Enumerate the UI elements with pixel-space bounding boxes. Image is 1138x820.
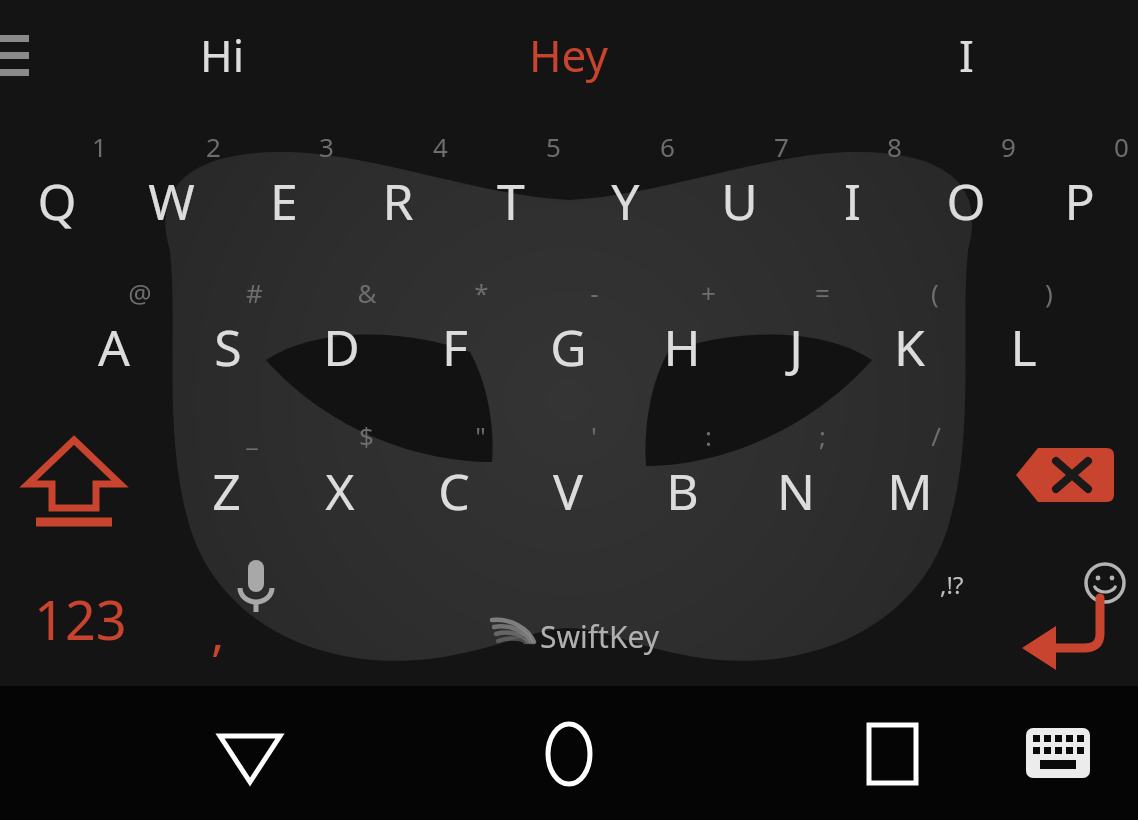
button[interactable]: N	[740, 435, 852, 547]
button[interactable]: I	[796, 145, 908, 257]
button[interactable]: E	[228, 145, 340, 257]
staticText: &	[357, 275, 377, 310]
staticText: V	[553, 457, 583, 525]
staticText: B	[666, 457, 699, 525]
staticText: 0	[1114, 129, 1129, 164]
button[interactable]: H	[626, 291, 738, 403]
staticText: (	[931, 275, 939, 310]
button[interactable]: Hi	[106, 8, 338, 102]
staticText: T	[497, 167, 525, 235]
staticText: *	[474, 275, 489, 310]
button[interactable]: X	[284, 435, 396, 547]
button[interactable]: Home	[520, 712, 616, 796]
button[interactable]: Enter	[1020, 596, 1112, 668]
staticText: I	[959, 25, 974, 85]
staticText: W	[148, 167, 195, 235]
staticText: S	[214, 313, 242, 381]
button[interactable]: W	[115, 145, 227, 257]
button[interactable]: Delete	[1016, 444, 1114, 506]
button[interactable]: Y	[569, 145, 681, 257]
button[interactable]: Hey	[452, 8, 684, 102]
staticText: E	[270, 167, 298, 235]
button[interactable]	[888, 560, 998, 668]
button[interactable]: F	[399, 291, 511, 403]
staticText: 1	[92, 129, 107, 164]
button[interactable]: U	[683, 145, 795, 257]
button[interactable]: K	[853, 291, 965, 403]
staticText: O	[946, 167, 986, 235]
button[interactable]: Recents	[842, 716, 938, 792]
button[interactable]: Menu	[0, 22, 58, 90]
staticText: N	[777, 457, 815, 525]
staticText: A	[98, 313, 130, 381]
button[interactable]: P	[1023, 145, 1135, 257]
staticText: M	[887, 457, 933, 525]
button[interactable]: M	[854, 435, 966, 547]
button[interactable]: ,	[182, 596, 254, 668]
staticText: P	[1064, 167, 1095, 235]
button[interactable]: T	[455, 145, 567, 257]
staticText: 2	[206, 129, 221, 164]
button[interactable]: R	[342, 145, 454, 257]
staticText: "	[475, 418, 486, 453]
staticText: #	[246, 275, 263, 310]
staticText: Q	[37, 167, 77, 235]
button[interactable]: L	[967, 291, 1079, 403]
staticText: =	[815, 275, 830, 310]
staticText: 8	[887, 129, 902, 164]
button[interactable]: B	[626, 435, 738, 547]
staticText: +	[701, 275, 716, 310]
staticText: R	[382, 167, 414, 235]
staticText: )	[1045, 275, 1053, 310]
staticText: 123	[34, 582, 127, 656]
button[interactable]: Q	[1, 145, 113, 257]
button[interactable]: Z	[170, 435, 282, 547]
staticText: U	[721, 167, 758, 235]
button[interactable]: G	[512, 291, 624, 403]
staticText: -	[590, 275, 599, 310]
staticText: X	[325, 457, 355, 525]
staticText: L	[1010, 313, 1037, 381]
staticText: 5	[546, 129, 561, 164]
staticText: 4	[433, 129, 448, 164]
button[interactable]: Emoji	[1082, 560, 1132, 610]
staticText: I	[844, 167, 861, 235]
button[interactable]: C	[398, 435, 510, 547]
staticText: _	[246, 418, 258, 453]
button[interactable]: S	[172, 291, 284, 403]
staticText: 6	[660, 129, 675, 164]
staticText: 9	[1001, 129, 1016, 164]
staticText: Hey	[529, 25, 608, 85]
staticText: C	[438, 457, 470, 525]
button[interactable]: I	[850, 8, 1082, 102]
staticText: @	[128, 275, 152, 310]
staticText: :	[705, 418, 712, 453]
staticText: '	[591, 418, 597, 453]
button[interactable]: Voice input	[228, 556, 284, 618]
button[interactable]: Hide keyboard	[200, 716, 300, 792]
staticText: 7	[774, 129, 789, 164]
staticText: F	[442, 313, 468, 381]
staticText: $	[359, 418, 374, 453]
staticText: ,!?	[940, 568, 964, 601]
staticText: /	[931, 418, 941, 453]
staticText: Hi	[200, 25, 244, 85]
staticText: G	[550, 313, 587, 381]
staticText: SwiftKey	[540, 616, 660, 657]
staticText: H	[663, 313, 701, 381]
staticText: Y	[611, 167, 640, 235]
button[interactable]: O	[910, 145, 1022, 257]
button[interactable]: Switch keyboard	[1012, 722, 1104, 788]
staticText: J	[789, 313, 803, 381]
button[interactable]: 123	[12, 580, 148, 658]
button[interactable]: A	[58, 291, 170, 403]
staticText: K	[894, 313, 925, 381]
staticText: 3	[319, 129, 334, 164]
button[interactable]: Shift caps lock	[22, 432, 126, 528]
button[interactable]: D	[285, 291, 397, 403]
staticText: ,	[211, 598, 225, 666]
button[interactable]: V	[512, 435, 624, 547]
button[interactable]: J	[740, 291, 852, 403]
staticText: Z	[212, 457, 241, 525]
